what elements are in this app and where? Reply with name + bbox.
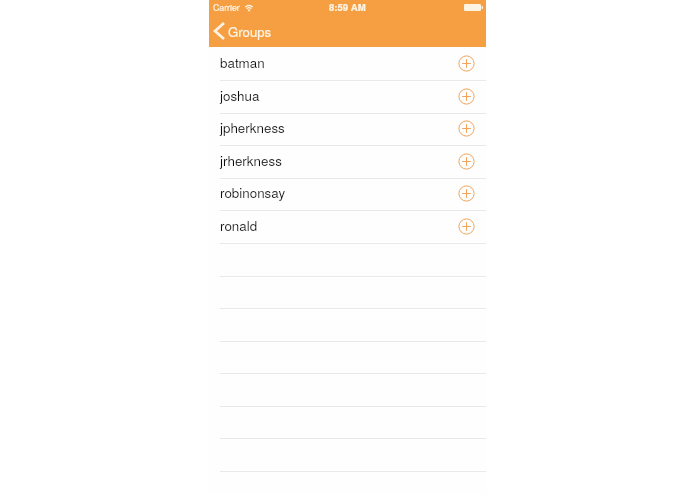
staticText: Carrier: [213, 1, 240, 14]
other: Wi-Fi signal: [244, 4, 254, 11]
button[interactable]: ronald: [209, 210, 486, 243]
button[interactable]: joshua: [209, 80, 486, 113]
staticText: Groups: [228, 22, 272, 41]
button[interactable]: jrherkness: [209, 145, 486, 178]
staticText: jpherkness: [220, 118, 285, 137]
staticText: ronald: [220, 216, 258, 235]
staticText: joshua: [220, 86, 260, 105]
other: Battery full: [464, 4, 483, 11]
button[interactable]: jpherkness: [209, 112, 486, 145]
button[interactable]: Add to group: [458, 112, 475, 145]
staticText: jrherkness: [220, 151, 282, 170]
staticText: robinonsay: [220, 183, 286, 202]
button[interactable]: Add to group: [458, 80, 475, 113]
button[interactable]: Back to Groups: [211, 21, 272, 41]
button[interactable]: Add to group: [458, 210, 475, 243]
button[interactable]: Add to group: [458, 47, 475, 80]
staticText: batman: [220, 53, 265, 72]
button[interactable]: Add to group: [458, 177, 475, 210]
staticText: 8:59 AM: [329, 0, 366, 14]
button[interactable]: Add to group: [458, 145, 475, 178]
button[interactable]: robinonsay: [209, 177, 486, 210]
button[interactable]: batman: [209, 47, 486, 80]
